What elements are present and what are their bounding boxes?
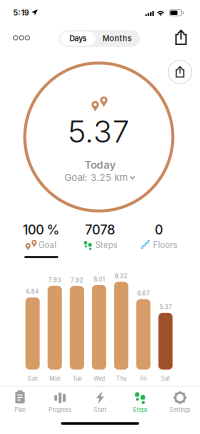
staticText: Sat xyxy=(161,375,170,382)
button[interactable]: 100 % xyxy=(11,222,71,258)
staticText: 6.67 xyxy=(137,290,149,297)
button[interactable]: Progress xyxy=(40,387,80,417)
staticText: Fri xyxy=(140,375,146,382)
staticText: 5.37 xyxy=(159,304,171,311)
staticText: Thu xyxy=(116,375,126,382)
button[interactable]: Steps xyxy=(120,387,160,417)
staticText: 100 % xyxy=(23,222,60,237)
staticText: 0 xyxy=(155,222,163,237)
staticText: Mon xyxy=(49,375,60,382)
staticText: 7.93 xyxy=(48,277,61,284)
staticText: Sun xyxy=(28,375,38,382)
staticText: Months xyxy=(102,34,131,43)
staticText: Start xyxy=(93,407,106,413)
staticText: 5:19 xyxy=(13,8,29,17)
button[interactable]: More options xyxy=(7,28,35,48)
staticText: 7.92 xyxy=(70,277,83,284)
staticText: 7078 xyxy=(85,222,115,237)
staticText: 8.01 xyxy=(93,276,104,283)
staticText: Steps xyxy=(95,240,117,250)
staticText: Floors xyxy=(153,240,177,250)
button[interactable]: 7078 xyxy=(70,222,130,258)
button[interactable]: Days xyxy=(60,31,95,45)
staticText: Steps xyxy=(132,407,147,413)
staticText: Today xyxy=(84,158,115,171)
staticText: Goal: 3.25 km xyxy=(64,172,127,183)
button[interactable]: Share distance xyxy=(168,60,192,84)
staticText: Progress xyxy=(48,407,71,413)
staticText: Goal xyxy=(38,240,56,250)
staticText: Settings xyxy=(169,407,190,413)
button[interactable]: Start xyxy=(80,387,120,417)
button[interactable]: Settings xyxy=(160,387,200,417)
staticText: 8.32 xyxy=(115,273,128,279)
staticText: Days xyxy=(69,34,86,43)
staticText: 6.84 xyxy=(26,288,39,295)
staticText: 5.37 xyxy=(68,113,129,150)
button[interactable]: Months xyxy=(95,31,138,45)
button[interactable]: 0 xyxy=(129,222,189,258)
staticText: Plan xyxy=(14,407,25,413)
button[interactable]: Plan xyxy=(0,387,40,417)
staticText: Wed xyxy=(93,375,104,382)
button[interactable]: Share xyxy=(168,27,194,49)
staticText: Tue xyxy=(72,375,81,382)
